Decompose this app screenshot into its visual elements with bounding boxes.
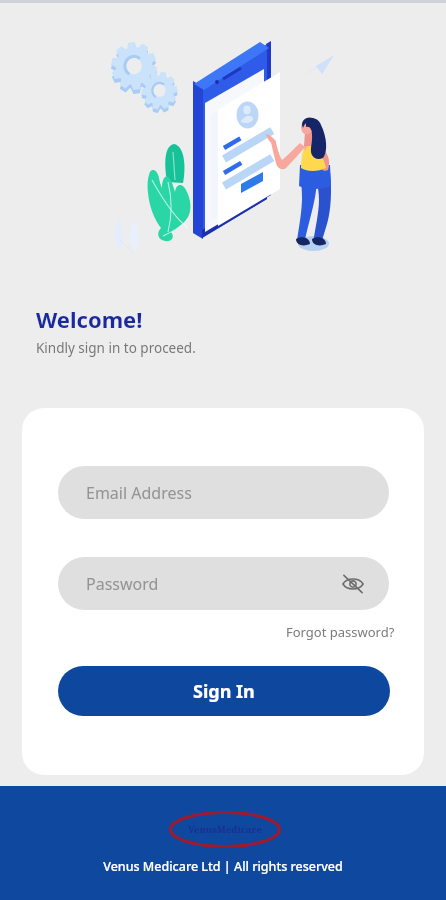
button[interactable]: Password bbox=[58, 557, 389, 610]
staticText: Welcome! bbox=[36, 304, 143, 334]
button[interactable]: Email Address bbox=[58, 466, 389, 519]
staticText: Password bbox=[86, 573, 159, 595]
staticText: VenusMedicare bbox=[188, 823, 262, 836]
staticText: Email Address bbox=[86, 482, 192, 504]
staticText: Forgot password? bbox=[286, 623, 395, 641]
button[interactable]: Forgot password? bbox=[282, 620, 399, 644]
staticText: Venus Medicare Ltd | All rights reserved bbox=[103, 858, 343, 875]
button[interactable]: Sign In bbox=[58, 666, 390, 716]
staticText: Sign In bbox=[193, 679, 255, 704]
staticText: Kindly sign in to proceed. bbox=[36, 339, 196, 357]
button[interactable]: Show password bbox=[337, 568, 369, 600]
